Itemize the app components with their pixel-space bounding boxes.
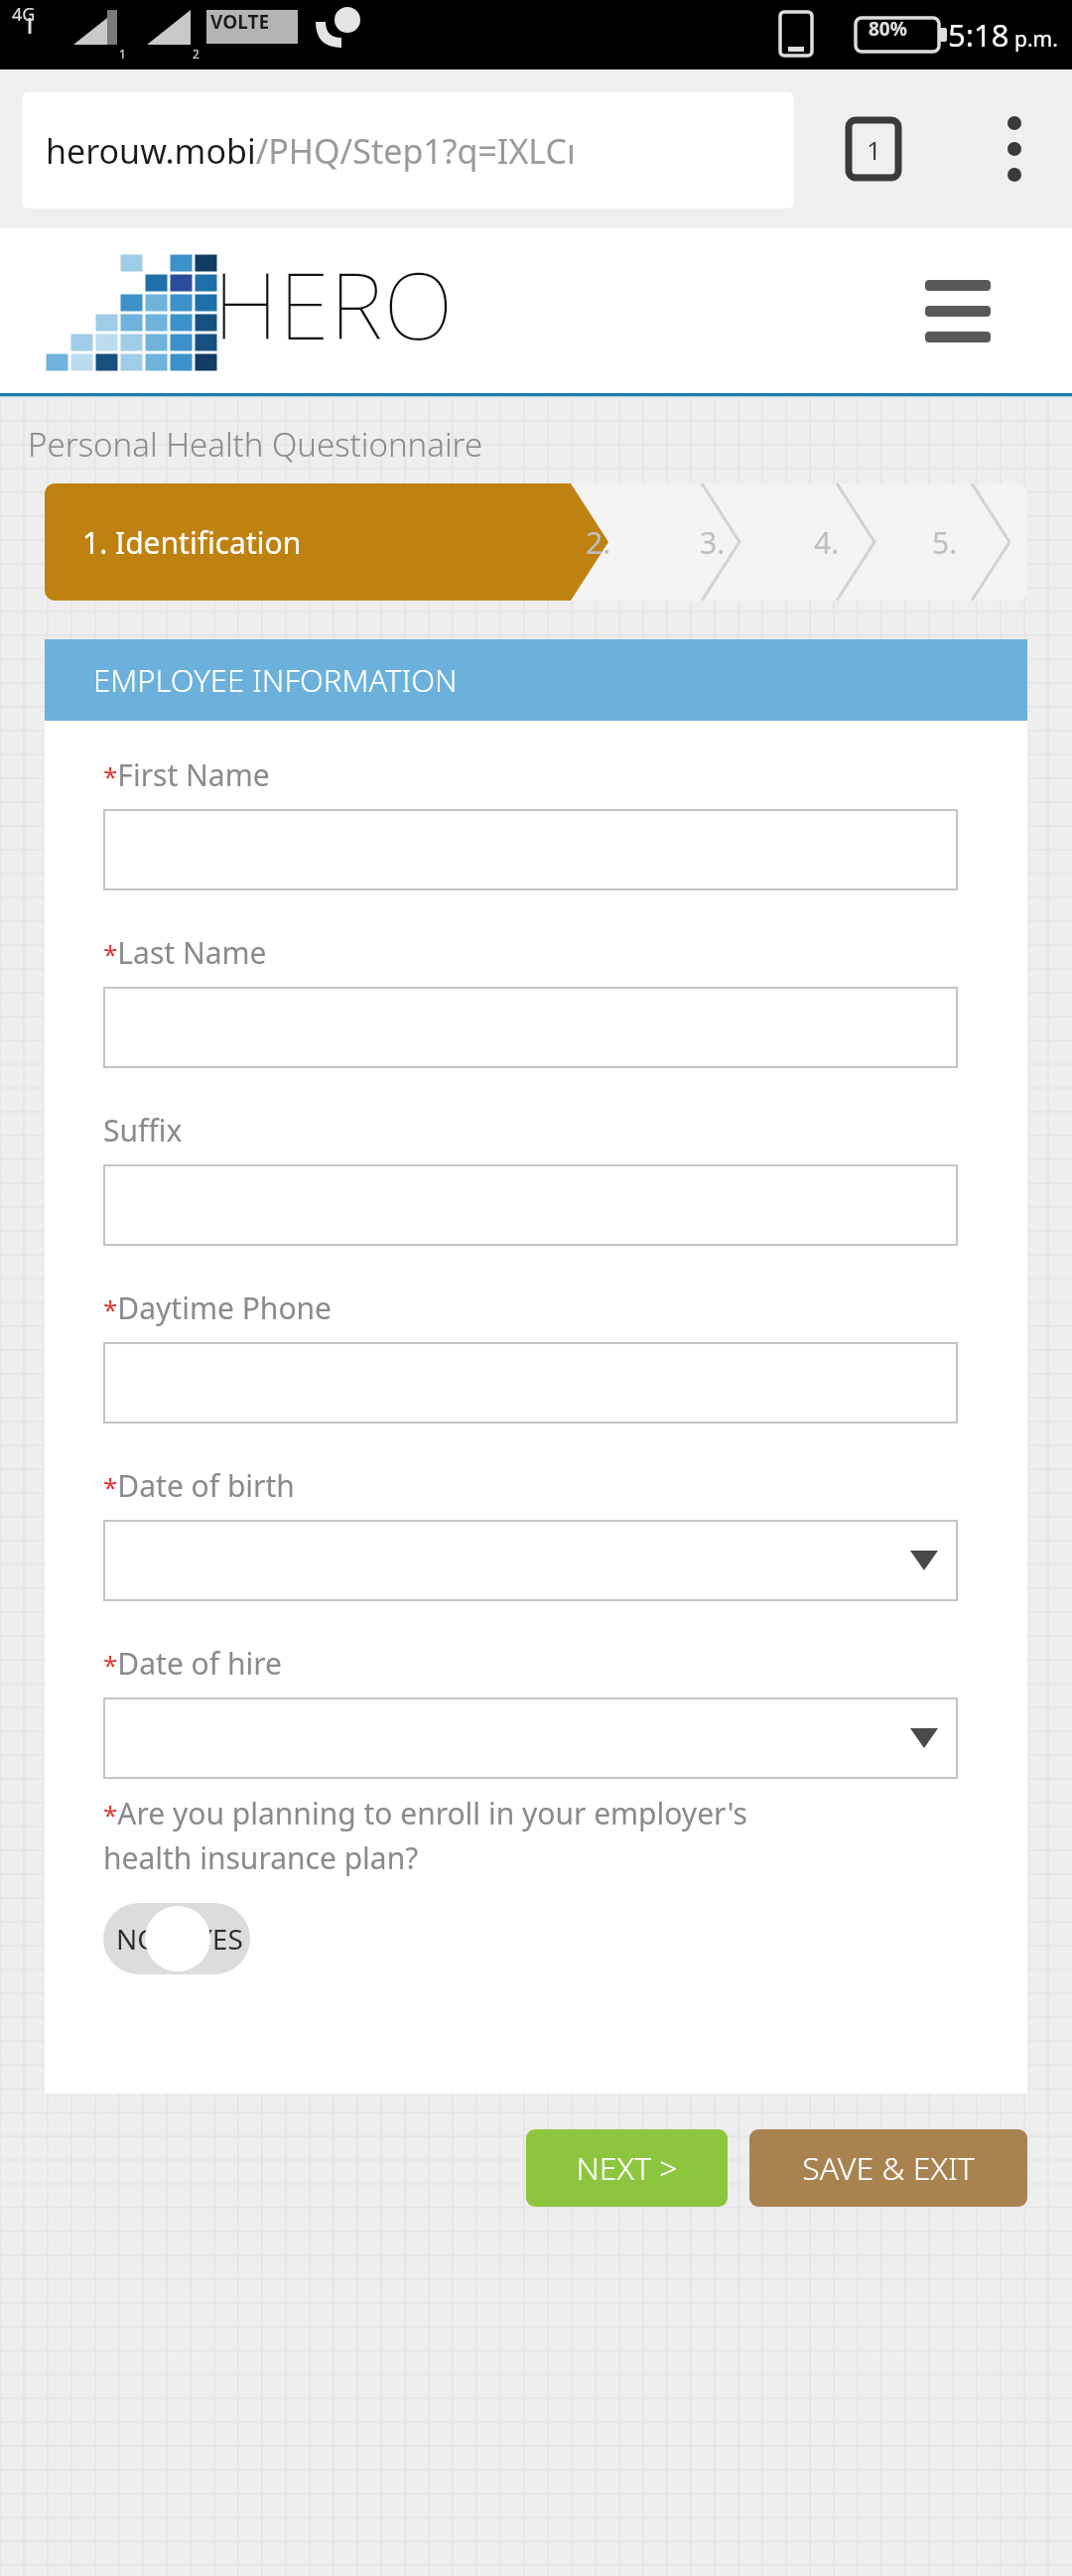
staticText: VOLTE — [210, 9, 270, 35]
button[interactable] — [103, 1342, 958, 1424]
button[interactable] — [103, 1697, 958, 1779]
button[interactable]: NEXT > — [526, 2129, 728, 2207]
staticText: p.m. — [1014, 25, 1058, 54]
button[interactable]: Tabs — [849, 120, 898, 178]
button[interactable]: herouw.mobi/PHQ/Step1?q=IXLCı — [22, 92, 794, 208]
staticText: herouw.mobi/PHQ/Step1?q=IXLCı — [46, 128, 576, 174]
staticText: SAVE & EXIT — [802, 2146, 975, 2190]
staticText: NEXT > — [576, 2146, 678, 2190]
button[interactable]: SAVE & EXIT — [749, 2129, 1027, 2207]
staticText: 1 — [119, 46, 126, 62]
staticText: *First Name — [103, 754, 270, 795]
staticText: 4G — [12, 2, 36, 27]
staticText: NO — [116, 1920, 160, 1958]
staticText: HERO — [213, 242, 455, 366]
staticText: *Daytime Phone — [103, 1288, 332, 1328]
staticText: Personal Health Questionnaire — [28, 422, 483, 467]
staticText: YES — [197, 1920, 243, 1958]
button[interactable] — [103, 809, 958, 890]
staticText: 2 — [193, 46, 200, 62]
staticText: 2. — [586, 522, 611, 563]
staticText: *Last Name — [103, 932, 267, 973]
staticText: *Are you planning to enroll in your empl… — [103, 1793, 747, 1877]
staticText: *Date of birth — [103, 1465, 295, 1506]
staticText: 80% — [869, 16, 907, 42]
button[interactable] — [103, 1520, 958, 1601]
staticText: *Date of hire — [103, 1643, 282, 1684]
staticText: 5:18 — [948, 14, 1009, 56]
button[interactable] — [103, 1164, 958, 1246]
button[interactable] — [103, 987, 958, 1068]
staticText: Suffix — [103, 1110, 183, 1151]
staticText: 5. — [932, 522, 958, 563]
staticText: 3. — [700, 522, 726, 563]
button[interactable]: Enrollment toggle, currently between No … — [103, 1903, 250, 1974]
staticText: 1 — [867, 132, 881, 167]
staticText: 1. Identification — [82, 522, 302, 563]
button[interactable]: Menu — [923, 276, 993, 345]
staticText: 4. — [814, 522, 840, 563]
staticText: EMPLOYEE INFORMATION — [93, 659, 458, 701]
button[interactable]: More options — [985, 119, 1044, 179]
